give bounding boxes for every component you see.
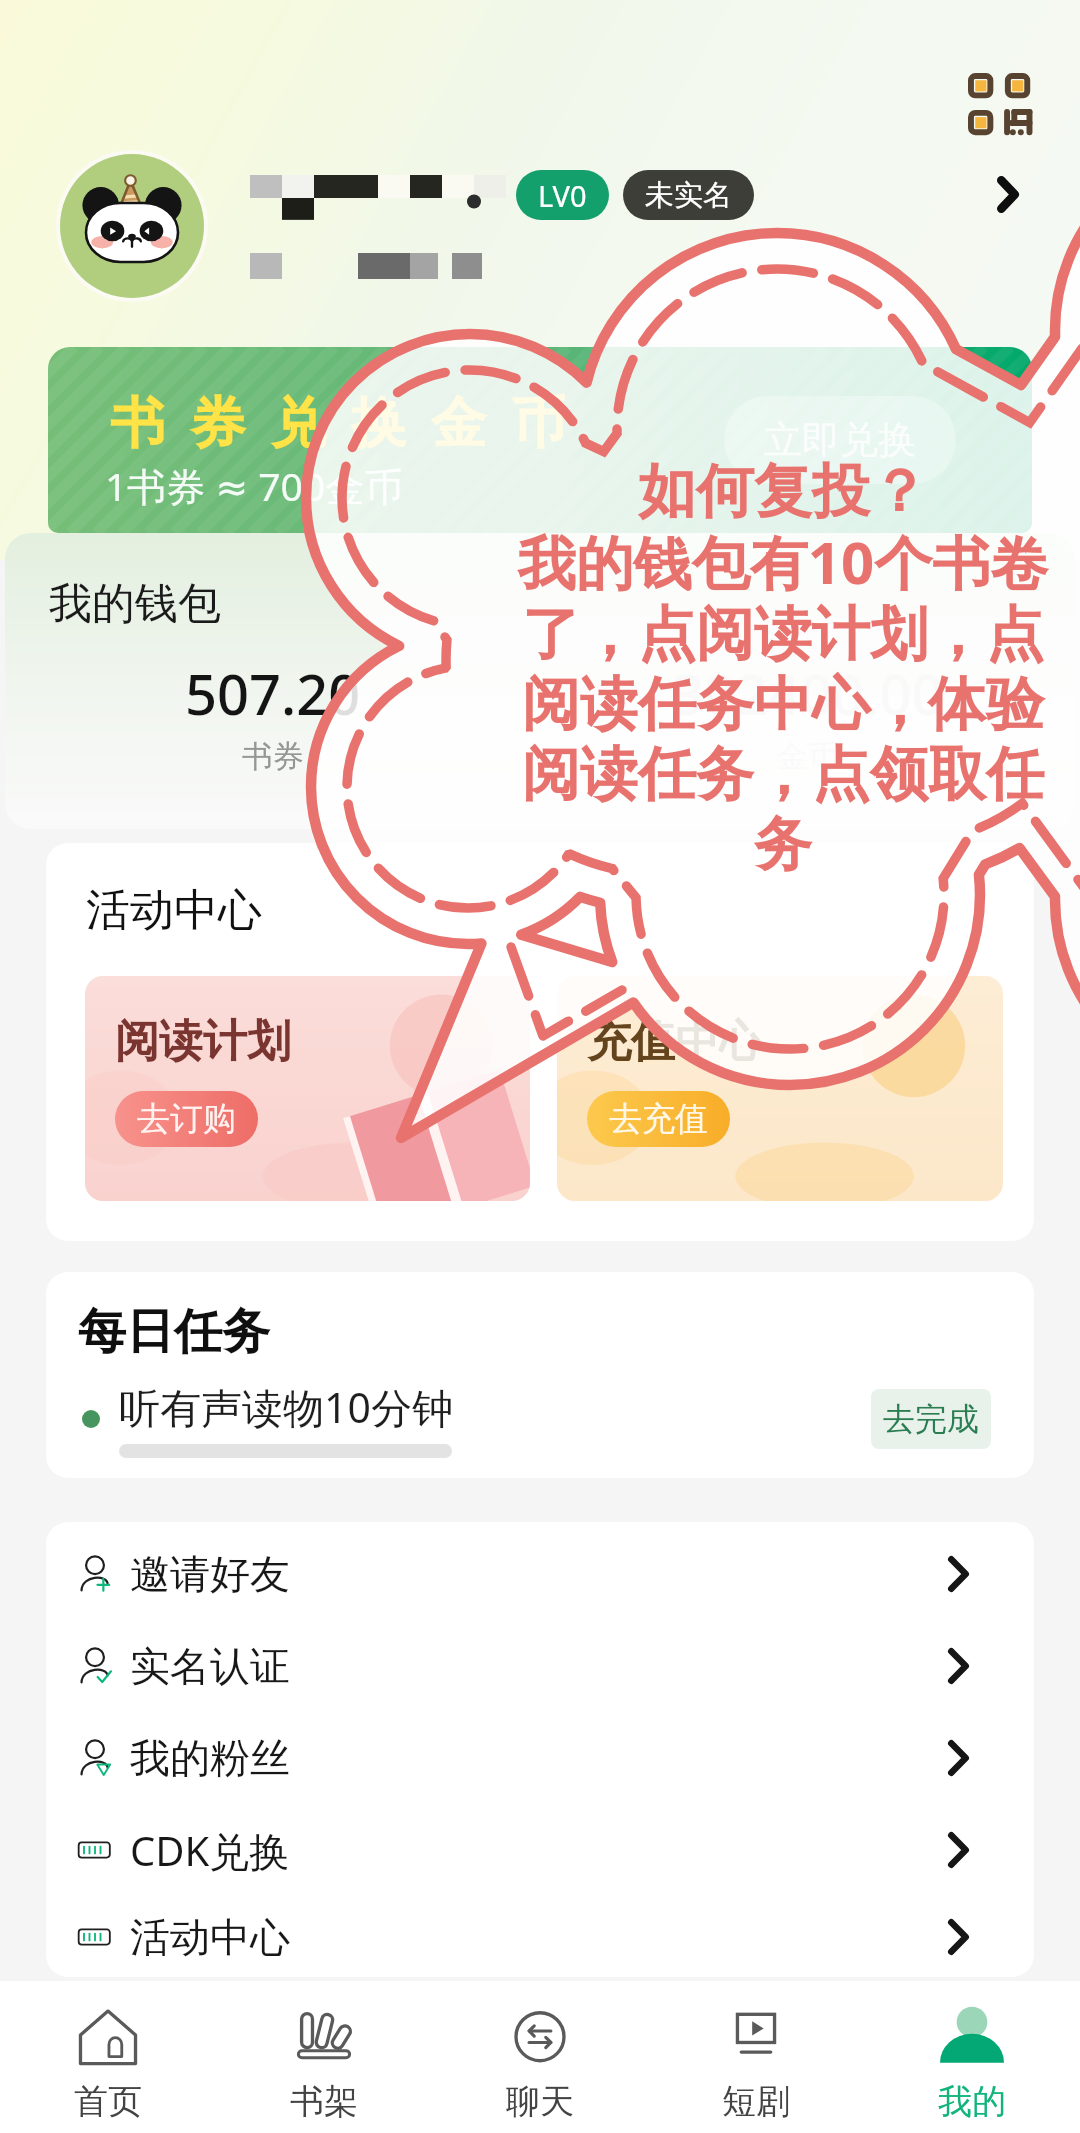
button[interactable]: 充值中心 <box>557 976 1003 1201</box>
button[interactable]: LV0 <box>0 0 1080 300</box>
staticText: 活动中心 <box>86 883 262 938</box>
button[interactable]: CDK兑换 <box>46 1804 1034 1896</box>
button[interactable]: 立即兑换 <box>724 396 956 484</box>
button[interactable]: 实名认证 <box>46 1620 1034 1712</box>
button[interactable]: LV0 <box>516 170 609 220</box>
staticText: 充值中心 <box>587 1014 763 1069</box>
staticText: 书券兑换金币 <box>110 389 592 458</box>
button[interactable]: 首页 <box>0 1981 216 2133</box>
staticText: 立即兑换 <box>764 416 916 464</box>
staticText: 首页 <box>74 2080 142 2123</box>
staticText: 听有声读物10分钟 <box>119 1379 453 1435</box>
staticText: 去充值 <box>609 1098 708 1140</box>
button[interactable]: 去充值 <box>587 1091 730 1147</box>
button[interactable]: 书架 <box>216 1981 432 2133</box>
staticText: 我的粉丝 <box>130 1733 290 1783</box>
staticText: 每日任务 <box>78 1302 270 1362</box>
button[interactable]: 阅读计划 <box>85 976 530 1201</box>
staticText: 金币 <box>777 737 839 776</box>
staticText: 我的 <box>938 2080 1006 2123</box>
button[interactable]: 听有声读物10分钟 <box>82 1379 991 1458</box>
button[interactable]: Scan QR code <box>962 67 1042 147</box>
button[interactable]: 聊天 <box>432 1981 648 2133</box>
staticText: 活动中心 <box>130 1912 290 1962</box>
button[interactable]: 我的粉丝 <box>46 1712 1034 1804</box>
staticText: 302400.00 <box>672 655 944 731</box>
staticText: 书券 <box>242 737 304 776</box>
staticText: LV0 <box>538 176 587 215</box>
staticText: 书架 <box>290 2080 358 2123</box>
button[interactable]: 我的钱包 <box>5 533 1075 829</box>
staticText: 去订购 <box>137 1098 236 1140</box>
staticText: 邀请好友 <box>130 1549 290 1599</box>
staticText: 去完成 <box>883 1399 979 1439</box>
staticText: 我的钱包 <box>49 577 221 631</box>
staticText: 短剧 <box>722 2080 790 2123</box>
button[interactable]: 去订购 <box>115 1091 258 1147</box>
staticText: 聊天 <box>506 2080 574 2123</box>
staticText: 阅读计划 <box>115 1014 291 1069</box>
staticText: 未实名 <box>645 177 732 214</box>
button[interactable]: 去完成 <box>871 1389 991 1449</box>
staticText: CDK兑换 <box>130 1823 290 1878</box>
staticText: 实名认证 <box>130 1641 290 1691</box>
staticText: 1书券 ≈ 700金币 <box>105 459 404 512</box>
button[interactable]: 活动中心 <box>46 1896 1034 1977</box>
button[interactable]: 未实名 <box>623 170 754 220</box>
button[interactable]: 我的 <box>864 1981 1080 2133</box>
button[interactable]: Profile details <box>980 166 1036 222</box>
button[interactable]: 短剧 <box>648 1981 864 2133</box>
staticText: 如何复投？ 我的钱包有10个书卷了，点阅读计划，点阅读任务中心，体验阅读任务，点… <box>507 455 1059 881</box>
button[interactable]: 书券兑换金币 <box>48 347 1032 533</box>
button[interactable]: 邀请好友 <box>46 1528 1034 1620</box>
staticText: 507.20 <box>185 655 361 731</box>
